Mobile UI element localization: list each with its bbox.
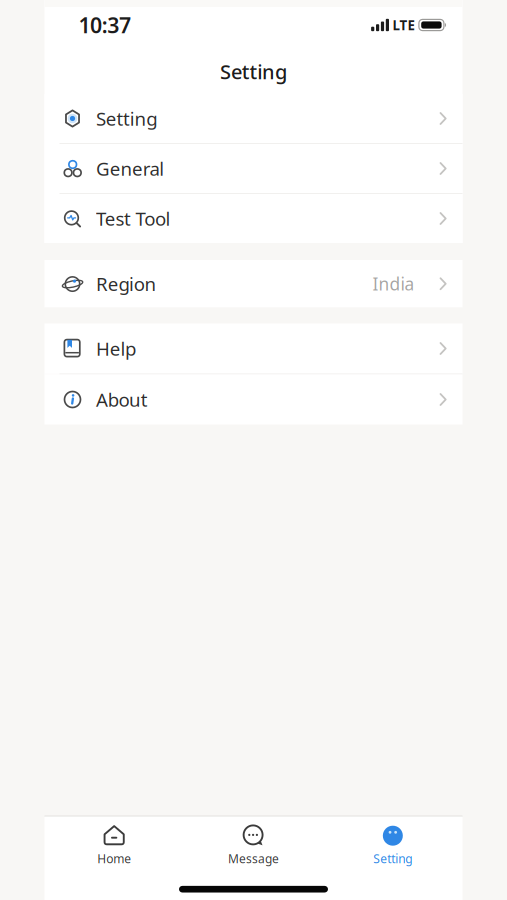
button[interactable]: Home <box>44 817 184 867</box>
staticText: General <box>96 156 164 181</box>
staticText: Test Tool <box>96 206 171 231</box>
staticText: 10:37 <box>78 11 131 39</box>
staticText: Message <box>228 851 279 867</box>
staticText: Setting <box>373 851 412 867</box>
staticText: Setting <box>96 106 157 131</box>
button[interactable]: Test Tool <box>44 194 462 243</box>
button[interactable]: Region <box>44 260 462 307</box>
button[interactable]: About <box>44 374 462 424</box>
button[interactable]: General <box>44 144 462 193</box>
button[interactable]: Message <box>184 817 323 867</box>
staticText: Region <box>96 271 156 296</box>
staticText: India <box>372 272 414 295</box>
staticText: LTE <box>392 16 414 34</box>
staticText: Help <box>96 336 136 361</box>
button[interactable]: Help <box>44 323 462 373</box>
button[interactable]: Setting <box>323 817 462 867</box>
staticText: Setting <box>220 58 287 85</box>
button[interactable]: Setting <box>44 94 462 143</box>
staticText: About <box>96 387 148 412</box>
staticText: Home <box>97 851 131 867</box>
